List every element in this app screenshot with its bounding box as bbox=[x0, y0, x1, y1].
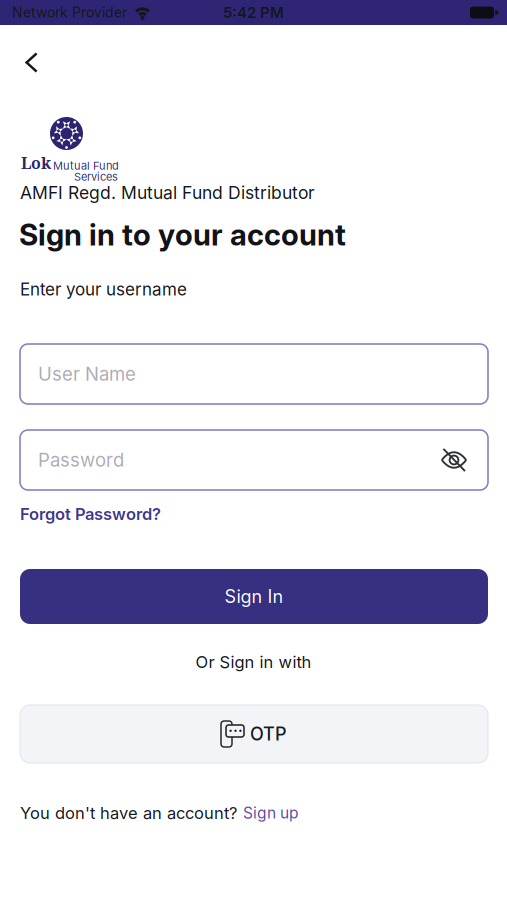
staticText: Sign in to your account bbox=[19, 217, 346, 253]
staticText: Enter your username bbox=[20, 279, 187, 300]
staticText: User Name bbox=[38, 363, 136, 385]
staticText: Forgot Password? bbox=[20, 504, 161, 524]
button[interactable]: Sign in with OTP bbox=[20, 705, 488, 763]
staticText: Or Sign in with bbox=[195, 652, 311, 672]
button[interactable]: Sign In bbox=[20, 569, 488, 624]
staticText: AMFI Regd. Mutual Fund Distributor bbox=[20, 182, 315, 203]
staticText: Services bbox=[74, 170, 118, 183]
staticText: Lok bbox=[21, 152, 51, 174]
button[interactable]: Forgot Password? bbox=[20, 504, 161, 524]
staticText: OTP bbox=[250, 723, 287, 745]
staticText: Sign up bbox=[243, 804, 298, 822]
button[interactable]: Sign up bbox=[243, 804, 298, 822]
staticText: Sign In bbox=[224, 586, 283, 607]
button[interactable]: Back bbox=[19, 46, 44, 79]
staticText: Mutual Fund bbox=[53, 159, 119, 172]
staticText: You don't have an account? bbox=[20, 803, 237, 823]
button[interactable]: Password bbox=[20, 430, 488, 490]
button[interactable]: User Name bbox=[20, 344, 488, 404]
staticText: Password bbox=[38, 449, 124, 471]
staticText: 5:42 PM bbox=[223, 3, 284, 21]
staticText: Network Provider bbox=[12, 4, 127, 21]
